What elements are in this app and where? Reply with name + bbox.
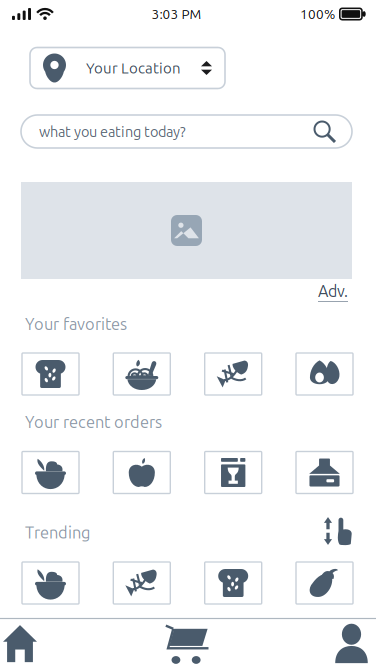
button[interactable] [113,451,170,493]
button[interactable] [205,562,262,604]
button[interactable] [205,451,262,493]
staticText: Your recent orders [25,413,162,431]
button[interactable]: Your Location [30,47,225,88]
button[interactable]: Sort [315,511,359,551]
button[interactable] [296,353,353,395]
staticText: Adv. [318,282,348,300]
button[interactable] [113,562,170,604]
staticText: 100% [300,6,335,21]
button[interactable]: Profile [266,620,370,668]
button[interactable] [22,562,79,604]
button[interactable] [296,451,353,493]
button[interactable]: Home [3,620,107,668]
button[interactable]: Cart [134,620,238,668]
button[interactable]: Adv. [318,282,348,302]
staticText: Your Location [86,60,181,76]
staticText: Trending [25,523,90,542]
button[interactable] [22,451,79,493]
button[interactable]: what you eating today? [21,115,352,148]
button[interactable] [113,353,170,395]
button[interactable] [296,562,353,604]
staticText: what you eating today? [39,123,186,140]
button[interactable] [205,353,262,395]
staticText: 3:03 PM [151,6,201,21]
button[interactable] [22,353,79,395]
staticText: Your favorites [25,315,127,333]
